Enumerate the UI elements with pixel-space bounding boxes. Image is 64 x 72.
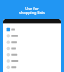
button[interactable]: Menu bbox=[3, 19, 61, 24]
staticText: shopping lists bbox=[19, 10, 45, 15]
staticText: Use for bbox=[25, 6, 39, 11]
